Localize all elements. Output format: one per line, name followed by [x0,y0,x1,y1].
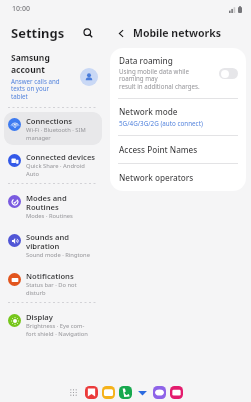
staticText: Quick Share · Android Auto [26,162,85,177]
button[interactable]: App [102,386,115,399]
button[interactable]: App [136,386,149,399]
staticText: Status bar · Do not disturb [26,281,77,296]
staticText: 10:00 [12,4,30,14]
button[interactable]: Back [112,24,130,42]
button[interactable]: Display [4,308,102,341]
staticText: Access Point Names [119,144,198,155]
staticText: Network operators [119,172,194,183]
button[interactable]: Samsung [0,48,106,107]
button[interactable]: Data roaming toggle [219,68,238,79]
button[interactable]: Search [78,23,98,43]
staticText: Samsung [11,52,50,64]
staticText: Mobile networks [133,26,222,40]
staticText: 5G/4G/3G/2G (auto connect) [119,119,203,128]
staticText: Brightness · Eye com- fort shield · Navi… [26,322,88,337]
button[interactable]: Notifications [4,267,102,300]
button[interactable]: Network operators [110,164,246,191]
button[interactable]: App [153,386,166,399]
button[interactable]: Connected devices [4,148,102,181]
button[interactable]: App [85,386,98,399]
staticText: Data roaming [119,55,173,66]
staticText: Modes · Routines [26,212,73,220]
button[interactable]: Data roaming [110,48,246,98]
staticText: account [11,64,45,76]
staticText: Using mobile data while roaming may resu… [119,67,214,91]
button[interactable]: App [170,386,183,399]
button[interactable]: Connections [4,112,102,145]
staticText: Settings [11,24,65,42]
staticText: Connected devices [26,152,96,162]
button[interactable]: Sounds and vibration [4,228,102,263]
staticText: Network mode [119,106,178,117]
staticText: Wi-Fi · Bluetooth · SIM manager [26,126,86,141]
button[interactable]: All apps [66,385,80,399]
staticText: Modes and Routines [26,193,67,212]
staticText: Sound mode · Ringtone [26,251,90,259]
button[interactable]: Modes and Routines [4,189,102,224]
staticText: Display [26,312,53,322]
button[interactable]: Network mode [110,99,246,135]
staticText: Notifications [26,271,74,281]
staticText: Connections [26,116,72,126]
staticText: Answer calls and texts on your tablet [11,77,60,101]
button[interactable]: App [119,386,132,399]
staticText: Sounds and vibration [26,232,70,251]
button[interactable]: Access Point Names [110,136,246,163]
